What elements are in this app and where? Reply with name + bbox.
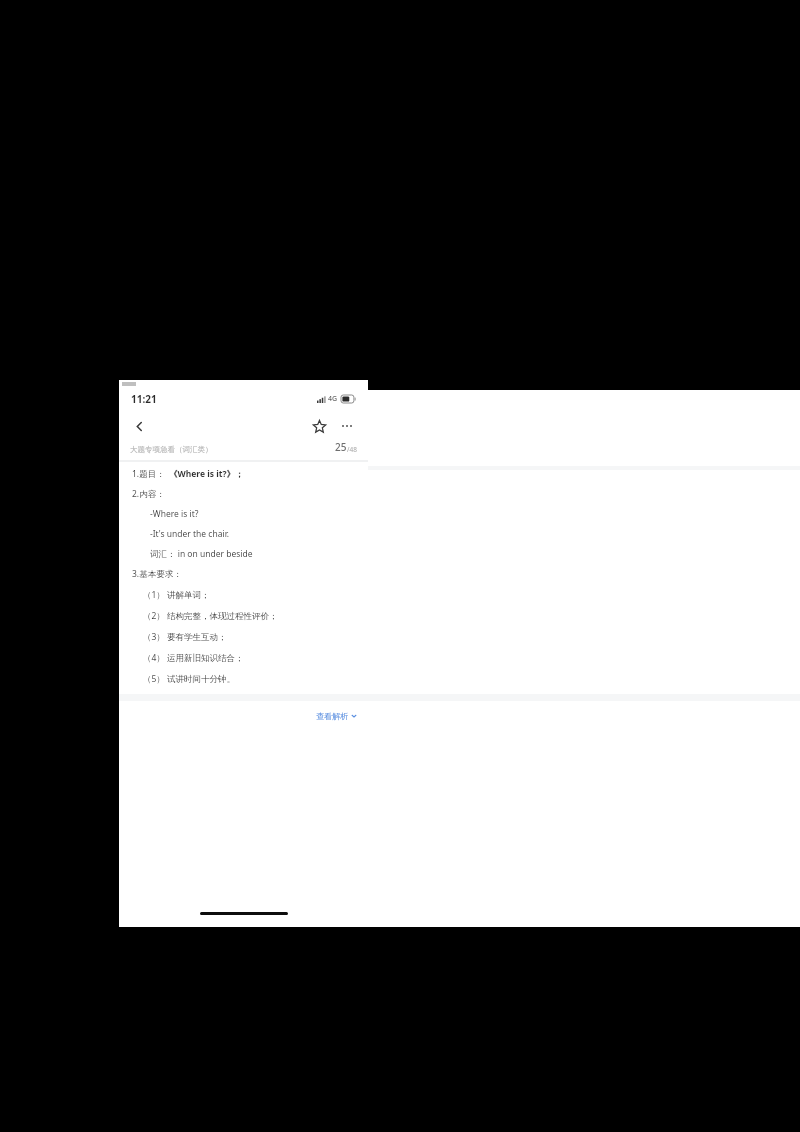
staticText: 查看解析 (316, 711, 348, 721)
staticText: 《Where is it?》； (169, 468, 244, 480)
staticText: （2） 结构完整，体现过程性评价； (143, 610, 278, 622)
staticText: 大题专项急看（词汇类） (130, 445, 213, 454)
staticText: （4） 运用新旧知识结合； (143, 652, 244, 664)
staticText: （1） 讲解单词； (143, 589, 210, 601)
button[interactable]: Favorite (307, 414, 331, 438)
staticText: -Where is it? (150, 508, 199, 520)
button[interactable]: Back (128, 415, 150, 437)
staticText: 25 (335, 440, 347, 454)
staticText: 词汇： in on under beside (150, 548, 253, 560)
staticText: 3.基本要求： (132, 568, 182, 580)
staticText: 11:21 (131, 392, 157, 406)
staticText: -It's under the chair. (150, 528, 230, 540)
button[interactable]: More options (335, 414, 359, 438)
staticText: 1.题目： (132, 468, 165, 480)
staticText: 4G (328, 394, 338, 404)
button[interactable]: 查看解析 (119, 709, 368, 723)
staticText: 2.内容： (132, 488, 165, 500)
staticText: /48 (347, 445, 357, 454)
staticText: （3） 要有学生互动； (143, 631, 227, 643)
staticText: （5） 试讲时间十分钟。 (143, 673, 236, 685)
